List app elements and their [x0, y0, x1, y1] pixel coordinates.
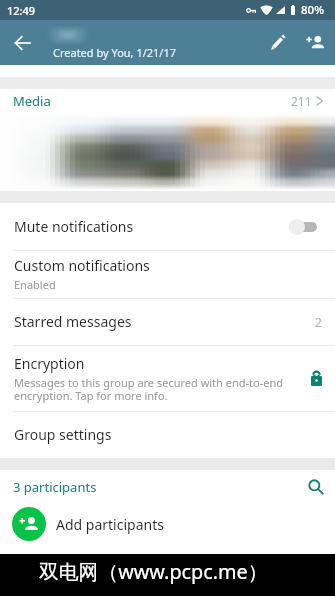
staticText: Enabled: [14, 277, 56, 292]
button[interactable]: Back: [0, 20, 44, 65]
button[interactable]: Media: [0, 89, 335, 113]
other: Search participants: [309, 480, 323, 494]
staticText: 211: [291, 93, 312, 109]
button[interactable]: Group settings: [0, 411, 335, 458]
staticText: Created by You, 1/21/17: [53, 45, 177, 60]
button[interactable]: Mute notifications: [0, 203, 335, 250]
staticText: Encryption: [14, 354, 85, 373]
button[interactable]: Edit group name: [261, 20, 295, 65]
staticText: 3 participants: [13, 478, 97, 496]
staticText: 80%: [301, 2, 324, 18]
button[interactable]: Encryption: [0, 345, 335, 411]
staticText: Add participants: [56, 515, 164, 534]
staticText: Starred messages: [14, 312, 132, 331]
staticText: 双电网（www.pcpc.me）: [39, 558, 268, 585]
button[interactable]: Starred messages: [0, 298, 335, 345]
staticText: Mute notifications: [14, 217, 134, 236]
staticText: Custom notifications: [14, 256, 150, 275]
button[interactable]: Add participant: [295, 20, 335, 65]
button[interactable]: Custom notifications: [0, 250, 335, 298]
staticText: Group settings: [14, 425, 112, 444]
button[interactable]: Add participants: [0, 503, 335, 554]
staticText: 12:49: [7, 3, 36, 18]
staticText: 2: [315, 314, 322, 330]
button[interactable]: 3 participants: [0, 470, 335, 503]
staticText: Media: [13, 92, 51, 110]
staticText: Messages to this group are secured with …: [14, 375, 303, 403]
